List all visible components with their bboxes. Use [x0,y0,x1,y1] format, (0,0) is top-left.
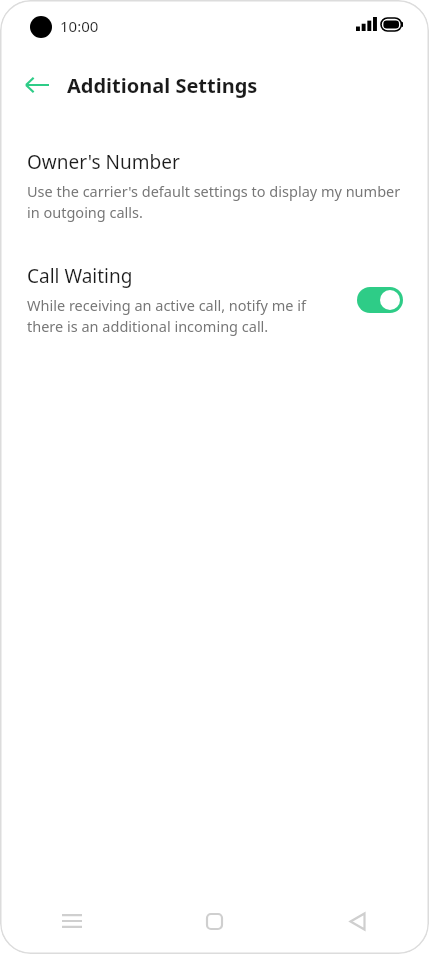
button[interactable]: Recent apps [0,888,143,954]
staticText: Owner's Number [27,149,180,175]
staticText: Use the carrier's default settings to di… [27,181,402,223]
button[interactable]: Call Waiting [0,259,429,347]
staticText: While receiving an active call, notify m… [27,295,321,337]
button[interactable]: Back [13,61,61,109]
staticText: 10:00 [60,16,99,36]
staticText: Additional Settings [67,72,258,99]
button[interactable]: Back [286,888,429,954]
button[interactable]: Home [143,888,286,954]
staticText: Call Waiting [27,263,133,289]
button[interactable]: Call Waiting toggle, on [357,287,403,313]
button[interactable]: Owner's Number [0,145,429,233]
